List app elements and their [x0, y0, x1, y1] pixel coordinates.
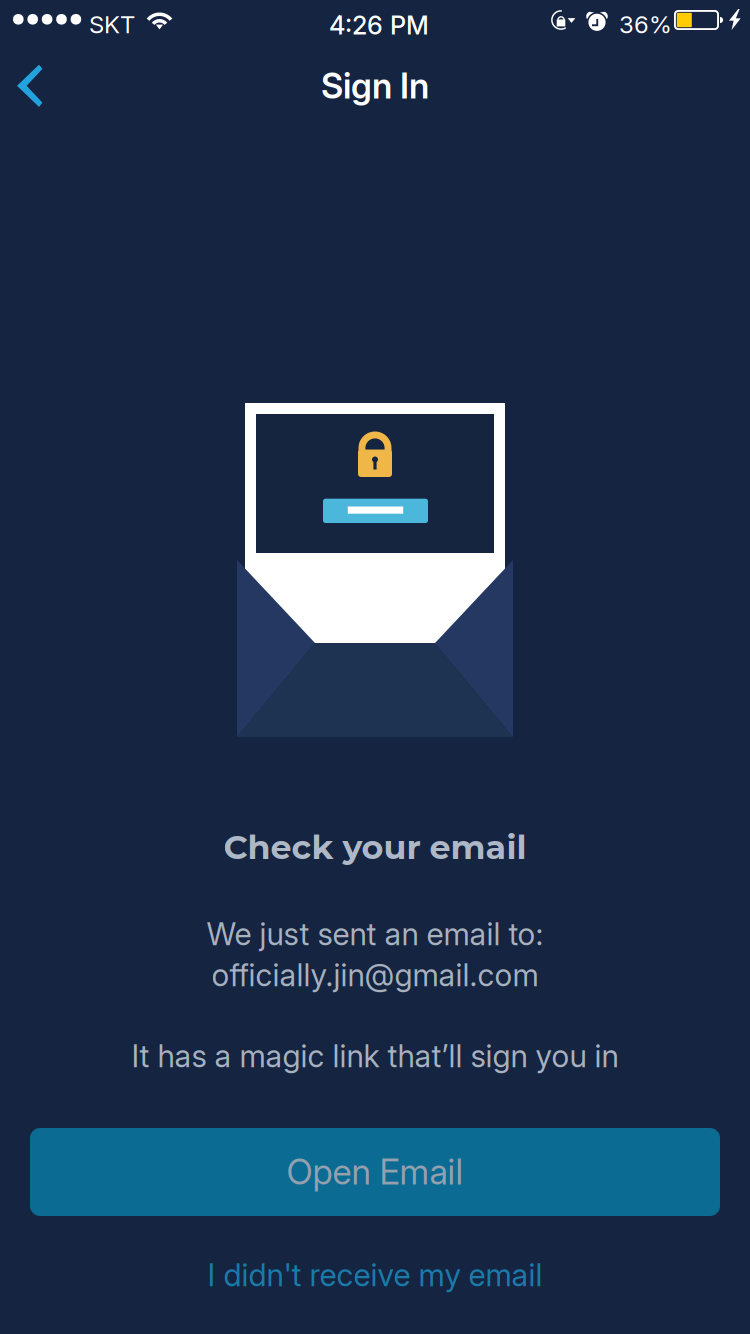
- staticText: Open Email: [286, 1151, 463, 1193]
- staticText: officially.jin@gmail.com: [211, 956, 538, 993]
- staticText: Sign In: [321, 65, 429, 107]
- staticText: We just sent an email to:: [206, 915, 543, 952]
- staticText: 4:26 PM: [329, 10, 429, 41]
- button[interactable]: I didn't receive my email: [0, 1244, 750, 1306]
- staticText: Check your email: [223, 827, 526, 867]
- button[interactable]: Back: [0, 53, 73, 118]
- staticText: 36%: [619, 10, 672, 39]
- staticText: SKT: [89, 10, 135, 39]
- staticText: I didn't receive my email: [207, 1256, 542, 1293]
- button[interactable]: Open Email: [30, 1128, 720, 1216]
- staticText: It has a magic link that’ll sign you in: [131, 1037, 618, 1074]
